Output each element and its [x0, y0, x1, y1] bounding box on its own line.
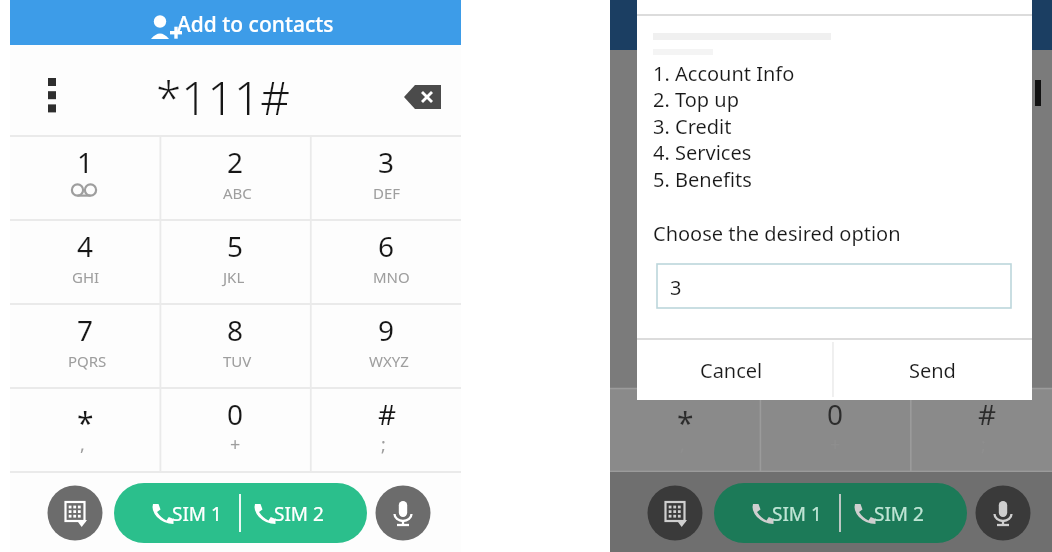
button[interactable] — [10, 304, 160, 388]
staticText: SIM 1 — [772, 501, 822, 527]
staticText: Send — [909, 357, 956, 384]
staticText: 6 — [378, 227, 395, 265]
button[interactable]: Voice input — [376, 486, 431, 541]
staticText: * — [677, 402, 694, 443]
button[interactable] — [657, 262, 1011, 310]
button[interactable] — [637, 339, 833, 400]
button[interactable] — [10, 136, 160, 220]
staticText: 2 — [227, 143, 244, 181]
staticText: 8 — [227, 311, 244, 349]
staticText: ABC — [223, 183, 252, 203]
button[interactable] — [160, 388, 310, 472]
staticText: 4. Services — [653, 139, 752, 166]
button[interactable]: More options — [30, 66, 75, 120]
staticText: TUV — [223, 351, 252, 371]
staticText: 0 — [227, 395, 244, 433]
staticText: # — [378, 395, 397, 433]
staticText: + — [230, 432, 241, 457]
staticText: Choose the desired option — [653, 220, 901, 247]
staticText: 3. Credit — [653, 113, 732, 140]
button[interactable]: Backspace — [394, 78, 450, 118]
staticText: SIM 2 — [874, 501, 924, 527]
staticText: SIM 1 — [172, 501, 222, 527]
staticText: ; — [381, 432, 386, 457]
staticText: 3 — [670, 274, 682, 301]
staticText: MNO — [373, 267, 410, 287]
button[interactable] — [160, 220, 310, 304]
staticText: SIM 2 — [274, 501, 324, 527]
staticText: # — [978, 395, 997, 433]
staticText: 5. Benefits — [653, 166, 752, 193]
button[interactable]: Hide dialpad — [37, 486, 92, 541]
staticText: DEF — [373, 183, 401, 203]
staticText: 3 — [378, 143, 395, 181]
button[interactable] — [160, 304, 310, 388]
staticText: * — [77, 402, 94, 443]
staticText: PQRS — [68, 351, 107, 371]
staticText: Cancel — [700, 357, 763, 384]
button[interactable] — [110, 482, 360, 543]
button[interactable] — [10, 0, 461, 45]
staticText: JKL — [223, 267, 245, 287]
button[interactable] — [311, 304, 461, 388]
button[interactable] — [10, 388, 160, 472]
staticText: 7 — [77, 311, 94, 349]
staticText: 2. Top up — [653, 86, 739, 113]
button[interactable] — [311, 220, 461, 304]
staticText: 9 — [378, 311, 395, 349]
staticText: WXYZ — [369, 351, 409, 371]
button[interactable] — [311, 388, 461, 472]
staticText: 0 — [827, 395, 844, 433]
staticText: 4 — [77, 227, 94, 265]
button[interactable] — [160, 136, 310, 220]
staticText: Add to contacts — [177, 10, 334, 39]
staticText: , — [80, 432, 85, 457]
staticText: 1 — [77, 143, 94, 181]
staticText: *111# — [156, 66, 290, 129]
button[interactable] — [10, 220, 160, 304]
staticText: 5 — [227, 227, 244, 265]
staticText: 1. Account Info — [653, 60, 795, 87]
staticText: GHI — [72, 267, 100, 287]
button[interactable] — [833, 339, 1032, 400]
button[interactable] — [311, 136, 461, 220]
